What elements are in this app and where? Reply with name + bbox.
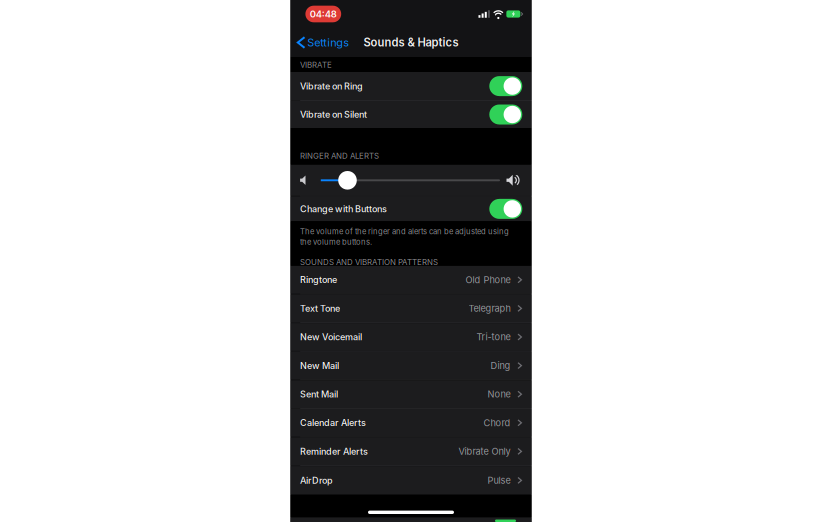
staticText: Ding xyxy=(491,360,511,371)
button[interactable]: Ringtone xyxy=(290,266,531,294)
staticText: Vibrate on Silent xyxy=(300,109,367,120)
staticText: Change with Buttons xyxy=(300,203,387,214)
staticText: None xyxy=(488,389,511,400)
button[interactable]: New Voicemail xyxy=(290,323,531,351)
staticText: RINGER AND ALERTS xyxy=(300,151,379,161)
staticText: Old Phone xyxy=(466,274,511,285)
button[interactable]: Text Tone xyxy=(290,294,531,322)
staticText: Pulse xyxy=(488,475,511,486)
staticText: Reminder Alerts xyxy=(300,446,368,457)
staticText: Vibrate Only xyxy=(459,446,511,457)
staticText: Telegraph xyxy=(469,303,511,314)
button[interactable]: Vibrate on Silent xyxy=(290,101,531,128)
staticText: 04:48 xyxy=(310,8,337,20)
staticText: Settings xyxy=(307,36,349,49)
staticText: Sent Mail xyxy=(300,389,338,400)
staticText: Tri-tone xyxy=(477,331,511,342)
staticText: New Mail xyxy=(300,360,339,371)
button[interactable]: Calendar Alerts xyxy=(290,409,531,437)
button[interactable]: AirDrop xyxy=(290,466,531,495)
staticText: Calendar Alerts xyxy=(300,417,366,428)
staticText: AirDrop xyxy=(300,475,333,486)
button[interactable]: Change with Buttons xyxy=(290,197,531,221)
button[interactable]: Settings xyxy=(290,30,355,55)
button[interactable]: Vibrate on Ring xyxy=(290,72,531,100)
button[interactable]: Reminder Alerts xyxy=(290,437,531,465)
staticText: Vibrate on Ring xyxy=(300,81,363,92)
staticText: the volume buttons. xyxy=(300,237,372,247)
button[interactable]: Sent Mail xyxy=(290,380,531,408)
staticText: New Voicemail xyxy=(300,331,362,342)
staticText: Sounds & Haptics xyxy=(363,36,458,49)
staticText: Chord xyxy=(484,417,511,428)
staticText: Text Tone xyxy=(300,303,340,314)
staticText: The volume of the ringer and alerts can … xyxy=(300,227,509,236)
staticText: SOUNDS AND VIBRATION PATTERNS xyxy=(300,257,438,267)
staticText: Ringtone xyxy=(300,274,337,285)
staticText: VIBRATE xyxy=(300,60,332,70)
button[interactable]: New Mail xyxy=(290,352,531,379)
